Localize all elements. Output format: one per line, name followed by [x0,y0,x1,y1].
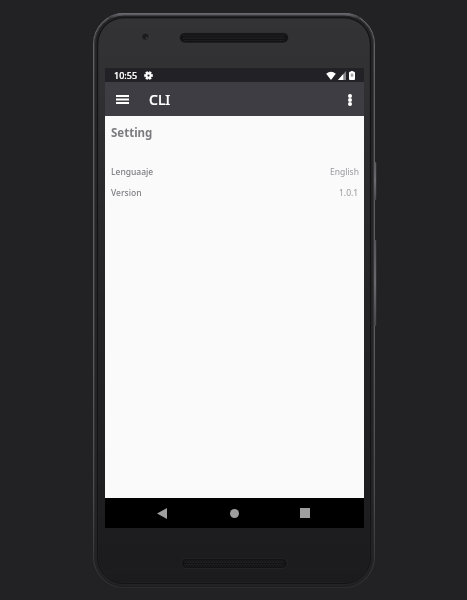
staticText: CLI [149,90,171,109]
staticText: 1.0.1 [339,187,359,199]
button[interactable]: Open navigation menu [111,88,133,110]
button[interactable]: Back [144,498,180,528]
staticText: 10:55 [114,69,138,81]
staticText: Version [111,187,142,199]
button[interactable]: Recent apps [287,498,323,528]
button[interactable]: Lenguaaje [105,161,364,182]
button[interactable]: Home [216,498,252,528]
button[interactable]: More options [339,89,360,110]
staticText: English [330,166,359,178]
button[interactable]: Version [105,182,364,203]
staticText: Setting [111,125,153,141]
staticText: Lenguaaje [111,166,154,178]
